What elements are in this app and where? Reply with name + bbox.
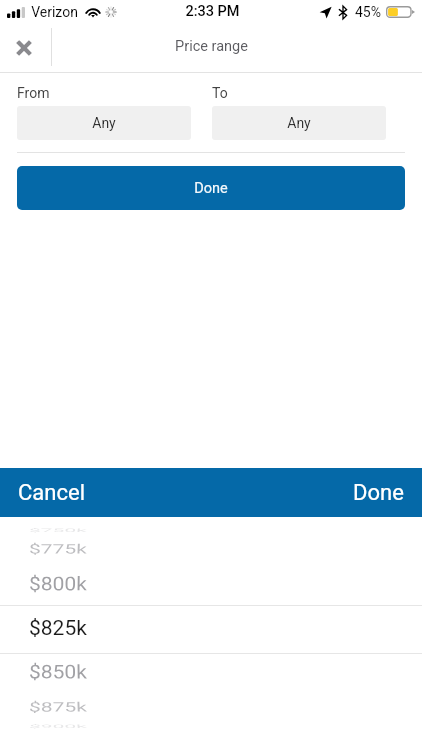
staticText: Cancel — [18, 480, 85, 506]
staticText: To — [212, 85, 386, 101]
button[interactable]: Close — [1, 23, 47, 72]
staticText: 45% — [355, 4, 381, 20]
button[interactable]: Any — [212, 106, 386, 140]
staticText: $875k — [29, 700, 87, 715]
staticText: $825k — [29, 616, 87, 641]
staticText: $800k — [29, 573, 87, 596]
staticText: Any — [287, 115, 311, 131]
staticText: Done — [353, 480, 404, 506]
button[interactable]: $800k — [0, 562, 422, 606]
staticText: 2:33 PM — [185, 3, 240, 20]
button[interactable]: Any — [17, 106, 191, 140]
button[interactable]: Done — [17, 166, 405, 210]
staticText: $750k — [29, 528, 87, 533]
button[interactable]: Done — [341, 468, 422, 517]
button[interactable]: $900k — [0, 704, 422, 748]
staticText: $775k — [29, 542, 87, 557]
staticText: Any — [92, 115, 116, 131]
staticText: Price range — [175, 38, 248, 55]
button[interactable]: Cancel — [0, 468, 97, 517]
button[interactable]: $825k — [0, 606, 422, 650]
staticText: $900k — [29, 724, 87, 729]
button[interactable]: $850k — [0, 650, 422, 694]
staticText: Done — [194, 180, 228, 197]
staticText: Verizon — [31, 4, 78, 20]
button[interactable]: $775k — [0, 527, 422, 571]
button[interactable]: $750k — [0, 508, 422, 552]
button[interactable]: $875k — [0, 685, 422, 729]
staticText: $850k — [29, 661, 87, 684]
staticText: From — [17, 85, 191, 101]
